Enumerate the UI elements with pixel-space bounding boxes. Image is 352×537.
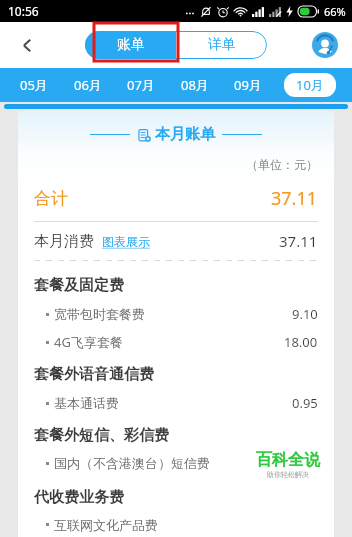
staticText: 37.11 <box>271 186 318 211</box>
staticText: 05月 <box>20 76 48 94</box>
staticText: 0.95 <box>292 394 318 412</box>
button[interactable]: 账单 <box>85 31 176 59</box>
staticText: 基本通话费 <box>54 395 119 411</box>
button[interactable]: 国内（不含港澳台）短信费 <box>18 450 334 476</box>
button[interactable]: 图表展示 <box>102 234 150 249</box>
button[interactable]: 合计 <box>34 186 318 211</box>
button[interactable]: 07月 <box>127 76 155 94</box>
staticText: 10月 <box>296 76 324 94</box>
button[interactable]: 09月 <box>234 76 262 94</box>
button[interactable]: Back <box>10 28 44 62</box>
button[interactable]: 10月 <box>296 76 324 94</box>
staticText: 套餐外语音通信费 <box>34 365 154 384</box>
staticText: （单位：元） <box>18 157 318 172</box>
button[interactable]: 详单 <box>176 31 267 59</box>
staticText: 9.10 <box>292 305 318 323</box>
staticText: 代收费业务费 <box>34 488 124 507</box>
button[interactable]: 基本通话费 <box>18 389 334 417</box>
staticText: 18.00 <box>284 333 318 351</box>
button[interactable]: 06月 <box>74 76 102 94</box>
button[interactable]: 代收费业务费 <box>18 479 334 512</box>
staticText: 助你轻松解决 <box>267 470 309 479</box>
staticText: 37.11 <box>279 231 318 251</box>
button[interactable]: 08月 <box>181 76 209 94</box>
button[interactable]: 套餐外短信、彩信费 <box>18 417 334 450</box>
staticText: 图表展示 <box>102 234 150 249</box>
button[interactable]: 宽带包时套餐费 <box>18 300 334 328</box>
staticText: 详单 <box>208 36 236 54</box>
staticText: 合计 <box>34 188 68 209</box>
staticText: 4G飞享套餐 <box>54 333 123 351</box>
staticText: 百科全说 <box>256 450 320 470</box>
staticText: 国内（不含港澳台）短信费 <box>54 455 210 471</box>
staticText: 06月 <box>74 76 102 94</box>
button[interactable]: 互联网文化产品费 <box>18 512 334 537</box>
staticText: 09月 <box>234 76 262 94</box>
staticText: 套餐及固定费 <box>34 276 124 295</box>
staticText: 本月账单 <box>155 125 215 144</box>
button[interactable]: 本月消费 <box>34 231 318 251</box>
staticText: 10:56 <box>8 3 39 19</box>
button[interactable]: 05月 <box>20 76 48 94</box>
staticText: 套餐外短信、彩信费 <box>34 426 169 445</box>
staticText: 08月 <box>181 76 209 94</box>
staticText: 66% <box>324 4 346 19</box>
staticText: 07月 <box>127 76 155 94</box>
button[interactable]: 套餐外语音通信费 <box>18 356 334 389</box>
staticText: 宽带包时套餐费 <box>54 306 145 322</box>
button[interactable]: Customer service <box>310 30 340 60</box>
button[interactable]: 套餐及固定费 <box>18 267 334 300</box>
button[interactable]: 4G飞享套餐 <box>18 328 334 356</box>
staticText: 本月消费 <box>34 232 94 251</box>
staticText: 账单 <box>117 36 145 54</box>
staticText: 互联网文化产品费 <box>54 517 158 532</box>
